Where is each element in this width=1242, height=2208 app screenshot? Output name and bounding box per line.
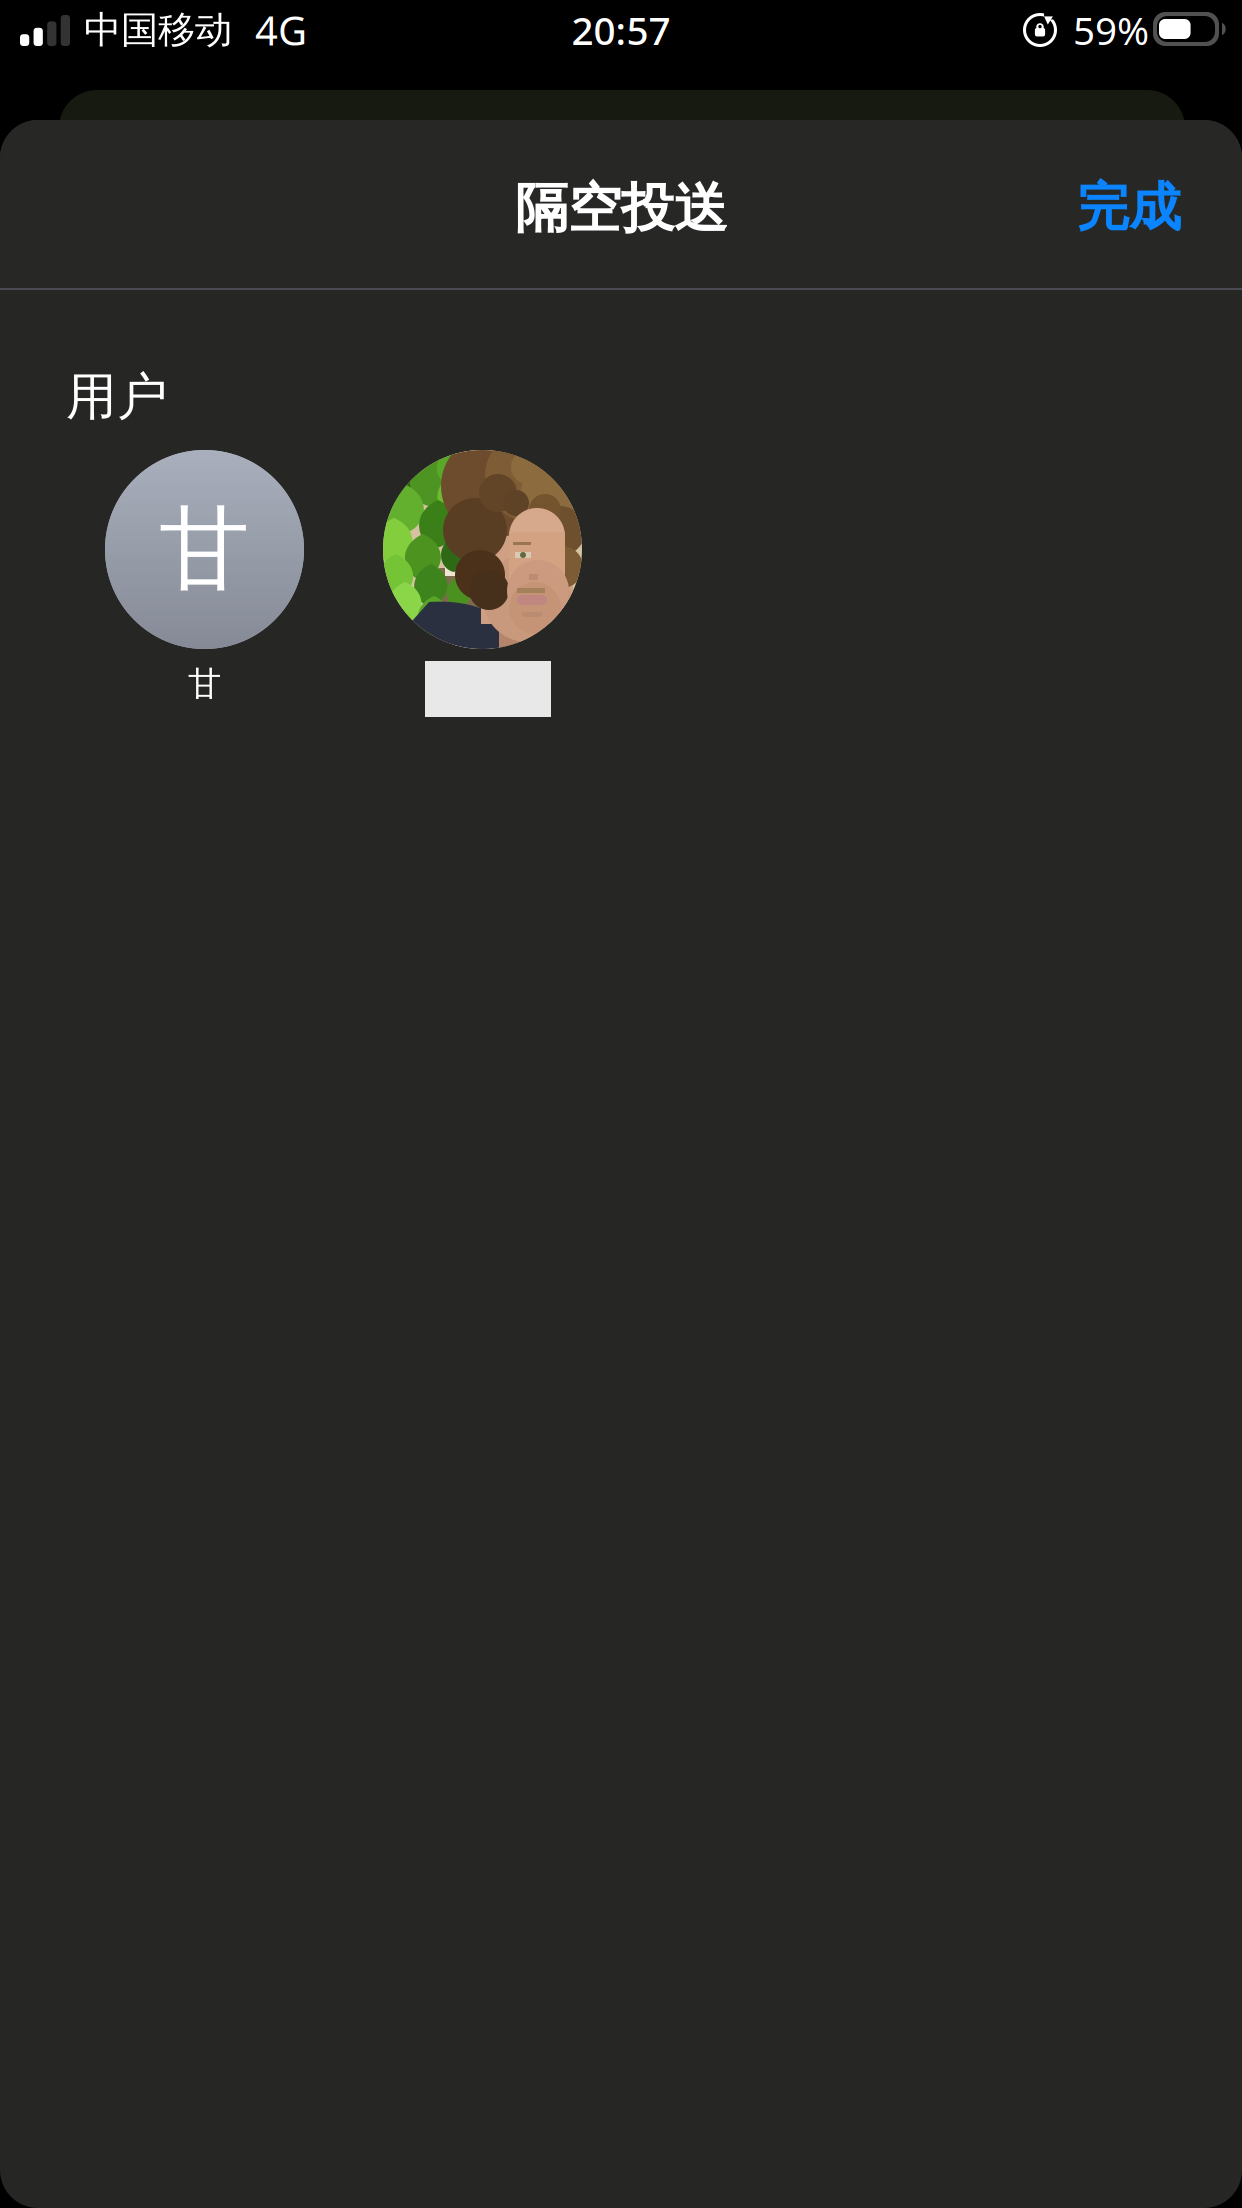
button[interactable]: 甘 (105, 450, 304, 710)
staticText: 隔空投送 (515, 176, 727, 241)
staticText: 中国移动 (84, 7, 232, 53)
staticText: 20:57 (571, 4, 670, 56)
staticText: 甘 (188, 663, 221, 704)
staticText: 甘 (159, 494, 250, 605)
button[interactable]: 完成 (1039, 120, 1219, 287)
staticText: 59% (1073, 4, 1149, 56)
staticText: 完成 (1077, 176, 1181, 239)
staticText: 4G (255, 3, 307, 56)
button[interactable]: Send to contact (383, 450, 582, 710)
staticText: 用户 (66, 366, 168, 428)
